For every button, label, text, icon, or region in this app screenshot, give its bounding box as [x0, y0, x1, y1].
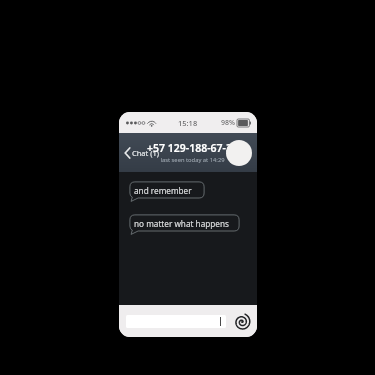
button[interactable]: no matter what happens: [129, 214, 240, 235]
staticText: and remember: [134, 185, 192, 196]
button[interactable]: Contact avatar: [226, 140, 252, 166]
button[interactable]: and remember: [129, 181, 205, 202]
staticText: 98%: [221, 118, 235, 128]
staticText: no matter what happens: [134, 218, 229, 229]
button[interactable]: Send: [232, 312, 251, 331]
staticText: +57 129-188-67-38: [147, 141, 238, 155]
button[interactable]: Chat (1): [123, 144, 162, 162]
button[interactable]: +57 129-188-67-38: [147, 141, 238, 164]
staticText: last seen today at 14:29: [160, 156, 225, 164]
staticText: Chat (1): [132, 148, 160, 158]
button[interactable]: [126, 315, 226, 328]
staticText: 15:18: [178, 118, 198, 128]
